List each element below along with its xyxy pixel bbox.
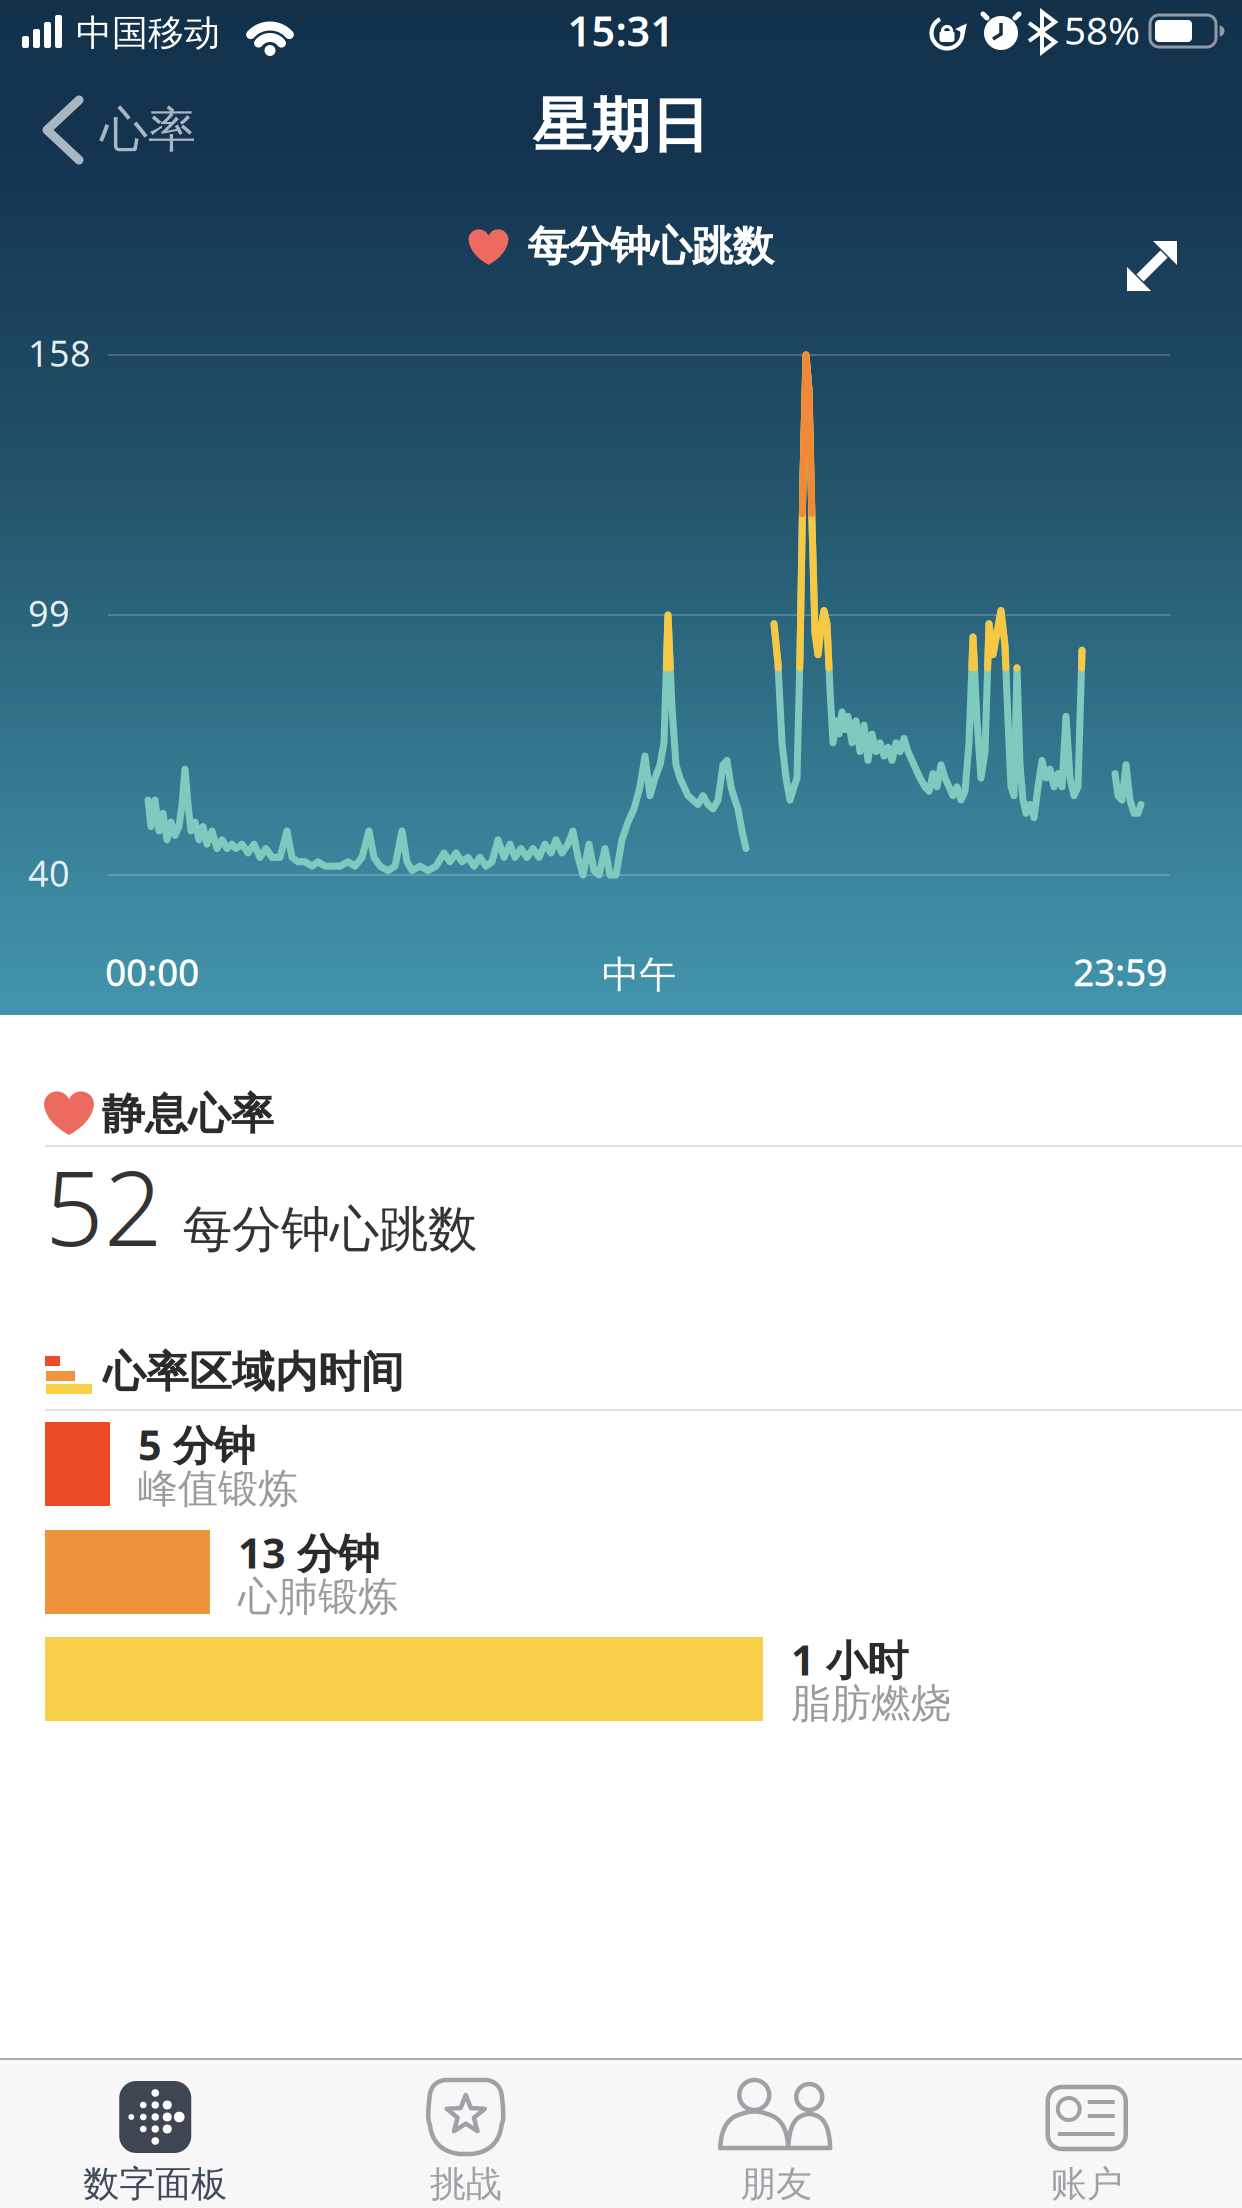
staticText: 心肺锻炼 <box>238 1572 398 1621</box>
button[interactable]: 朋友 <box>621 2058 931 2208</box>
staticText: 00:00 <box>105 947 199 997</box>
button[interactable]: 数字面板 <box>0 2058 310 2208</box>
button[interactable]: 挑战 <box>311 2058 621 2208</box>
staticText: 13 分钟 <box>238 1525 379 1580</box>
staticText: 数字面板 <box>83 2162 227 2206</box>
staticText: 脂肪燃烧 <box>791 1679 951 1728</box>
staticText: 心率区域内时间 <box>103 1346 404 1398</box>
staticText: 每分钟心跳数 <box>183 1199 477 1260</box>
staticText: 40 <box>28 849 70 897</box>
staticText: 15:31 <box>567 3 674 58</box>
staticText: 58% <box>1064 4 1140 55</box>
staticText: 中午 <box>602 952 676 998</box>
staticText: 52 <box>45 1138 163 1274</box>
staticText: 5 分钟 <box>138 1417 255 1472</box>
button[interactable]: 账户 <box>932 2058 1242 2208</box>
staticText: 心率 <box>100 100 196 159</box>
staticText: 静息心率 <box>102 1088 274 1140</box>
staticText: 中国移动 <box>76 11 220 55</box>
staticText: 账户 <box>1051 2162 1123 2206</box>
staticText: 1 小时 <box>791 1632 908 1687</box>
button[interactable]: 展开图表 <box>1120 234 1184 298</box>
staticText: 朋友 <box>740 2162 812 2206</box>
staticText: 23:59 <box>1073 947 1167 997</box>
staticText: 99 <box>28 589 70 637</box>
button[interactable]: 心率 <box>42 97 196 163</box>
staticText: 星期日 <box>532 90 709 162</box>
staticText: 158 <box>28 329 91 377</box>
staticText: 每分钟心跳数 <box>527 221 773 272</box>
staticText: 峰值锻炼 <box>138 1464 298 1513</box>
staticText: 挑战 <box>430 2162 502 2206</box>
